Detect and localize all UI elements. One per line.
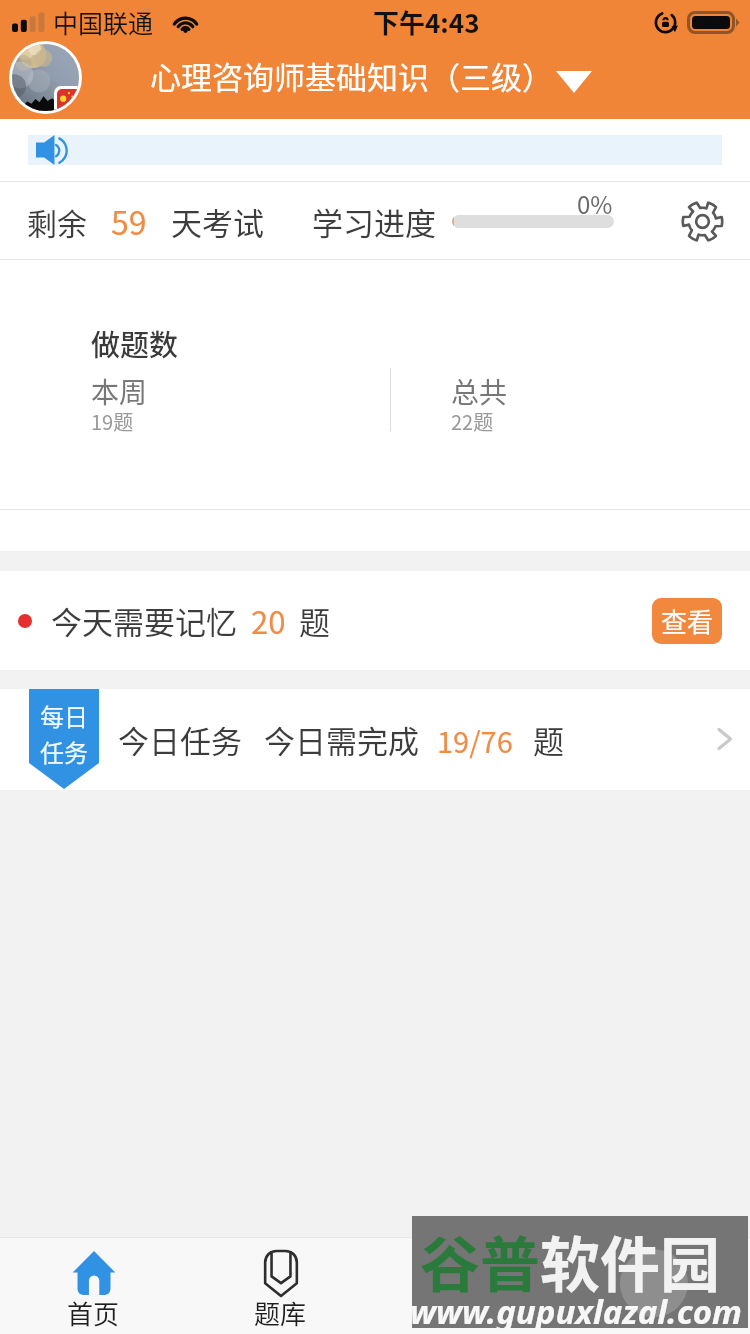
staticText: 任务 (40, 734, 88, 769)
button[interactable]: 今天需要记忆 (0, 571, 750, 670)
staticText: 本周 (91, 371, 148, 412)
button[interactable]: Settings (675, 194, 729, 248)
staticText: 中国联通 (53, 4, 154, 40)
staticText: 首页 (67, 1294, 120, 1332)
button[interactable]: 查看 (652, 598, 722, 644)
staticText: 软件园 (540, 1217, 720, 1304)
staticText: 题 (533, 717, 564, 762)
staticText: 下午4:43 (373, 3, 480, 41)
staticText: 20 (251, 598, 286, 643)
staticText: 题 (299, 598, 330, 643)
staticText: 资料库 (429, 1294, 508, 1332)
staticText: 每日 (40, 698, 88, 733)
staticText: 谷普 (420, 1217, 540, 1304)
button[interactable]: Announcement (28, 135, 722, 165)
staticText: 59 (111, 198, 147, 244)
staticText: 今日需完成 (264, 717, 419, 762)
staticText: 19题 (91, 407, 134, 436)
staticText: 今天需要记忆 (51, 598, 237, 643)
staticText: 学习进度 (312, 199, 436, 244)
button[interactable]: Profile (12, 44, 79, 111)
staticText: 19/76 (437, 719, 513, 761)
staticText: 题库 (254, 1294, 307, 1332)
staticText: www.gupuxlazal.com (410, 1289, 742, 1334)
staticText: 剩余 (27, 200, 87, 243)
staticText: 心理咨询师基础知识（三级） (150, 53, 553, 98)
staticText: 今日任务 (118, 717, 242, 762)
button[interactable]: Switch course (548, 58, 600, 106)
button[interactable]: 首页 (0, 1238, 187, 1334)
button[interactable]: 我的 (562, 1238, 750, 1334)
staticText: 做题数 (91, 322, 179, 364)
staticText: 0% (577, 186, 613, 221)
button[interactable]: 今日任务 (0, 689, 750, 790)
staticText: 22题 (451, 407, 494, 436)
button[interactable]: 题库 (187, 1238, 374, 1334)
staticText: 总共 (451, 371, 508, 412)
staticText: 查看 (661, 602, 714, 640)
staticText: 天考试 (171, 199, 264, 244)
button[interactable]: 资料库 (374, 1238, 562, 1334)
staticText: 我的 (630, 1294, 683, 1332)
